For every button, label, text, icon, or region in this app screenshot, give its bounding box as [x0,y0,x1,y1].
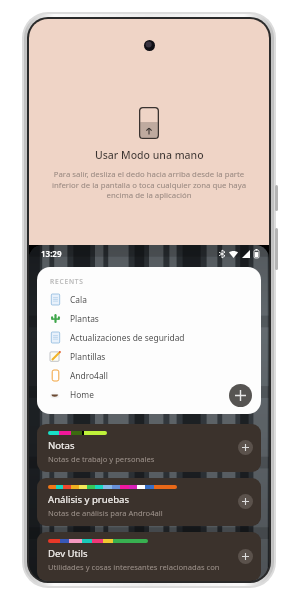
button[interactable]: Notas [37,424,261,472]
staticText: Utilidades y cosas interesantes relacion… [48,562,227,573]
button[interactable]: Crear nota [229,384,252,407]
staticText: Dev Utils [48,547,88,560]
staticText: Análisis y pruebas [48,493,130,506]
button[interactable]: Home [37,385,261,404]
button[interactable]: Andro4all [37,366,261,385]
staticText: Notas de trabajo y personales [48,454,227,464]
staticText: Cala [70,294,87,305]
staticText: Actualizaciones de seguridad [70,332,185,343]
staticText: Plantas [70,313,99,324]
staticText: Andro4all [70,370,108,381]
button[interactable]: Añadir nota a Notas [238,440,253,455]
button[interactable]: Actualizaciones de seguridad [37,328,261,347]
button[interactable]: Añadir nota a Dev Utils [238,549,253,564]
button[interactable]: Plantillas [37,347,261,366]
button[interactable]: Cala [37,290,261,309]
staticText: Notas [48,439,75,452]
staticText: 13:29 [41,248,62,259]
staticText: Usar Modo una mano [95,148,204,162]
staticText: Plantillas [70,351,106,362]
button[interactable]: Análisis y pruebas [37,478,261,526]
staticText: Notas de análisis para Andro4all [48,508,227,518]
staticText: RECENTS [50,277,84,286]
staticText: Para salir, desliza el dedo hacia arriba… [51,169,247,201]
button[interactable]: Dev Utils [37,532,261,581]
button[interactable]: Plantas [37,309,261,328]
staticText: Home [70,389,94,400]
button[interactable]: Añadir nota a Análisis y pruebas [238,494,253,509]
